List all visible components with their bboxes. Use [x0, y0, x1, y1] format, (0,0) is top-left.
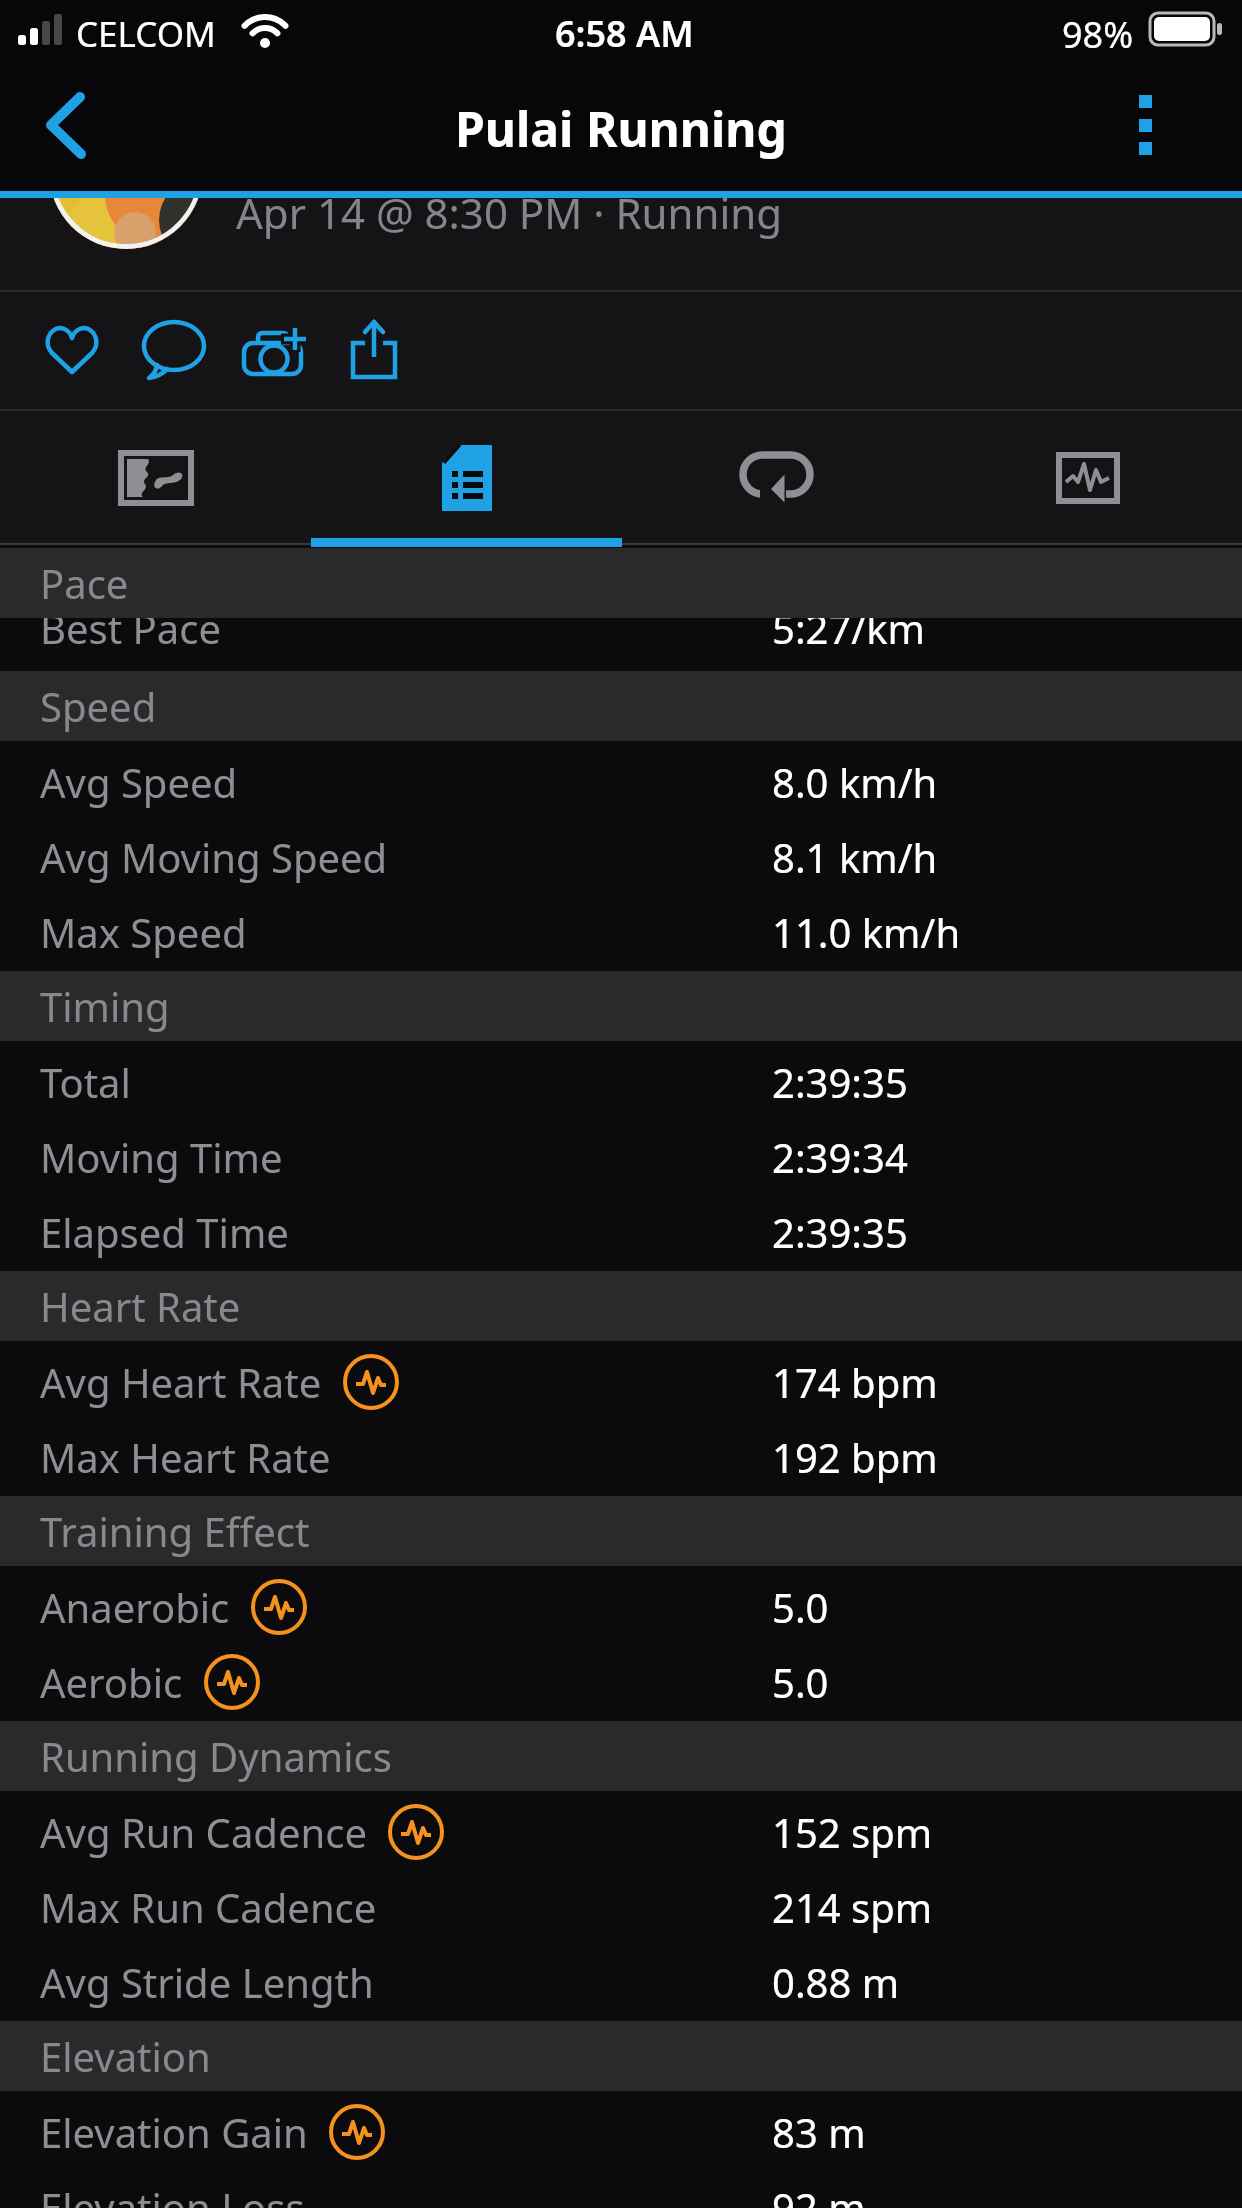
- button[interactable]: [10, 70, 120, 180]
- button[interactable]: [311, 411, 622, 545]
- staticText: Pulai Running: [455, 96, 787, 161]
- staticText: Elevation Gain: [40, 2105, 308, 2159]
- staticText: Elevation Loss: [40, 2180, 305, 2208]
- staticText: 174 bpm: [772, 1355, 938, 1409]
- button[interactable]: [932, 411, 1242, 545]
- button[interactable]: Avg Run Cadence: [0, 1794, 1242, 1869]
- staticText: 8.0 km/h: [772, 755, 938, 809]
- staticText: Elevation: [40, 2029, 211, 2083]
- staticText: Moving Time: [40, 1130, 283, 1184]
- button[interactable]: Avg Speed: [0, 744, 1242, 819]
- staticText: Anaerobic: [40, 1580, 230, 1634]
- staticText: 98%: [1062, 10, 1134, 59]
- staticText: Heart Rate: [40, 1279, 241, 1333]
- staticText: Running Dynamics: [40, 1729, 392, 1783]
- button[interactable]: Elevation Loss: [0, 2169, 1242, 2208]
- button[interactable]: Max Speed: [0, 894, 1242, 969]
- staticText: 5:27/km: [772, 601, 925, 655]
- staticText: Max Heart Rate: [40, 1430, 331, 1484]
- staticText: 5.0: [772, 1655, 829, 1709]
- button[interactable]: Elevation Gain: [0, 2094, 1242, 2169]
- staticText: Avg Heart Rate: [40, 1355, 322, 1409]
- staticText: Speed: [40, 679, 157, 733]
- button[interactable]: [329, 304, 421, 396]
- button[interactable]: Aerobic: [0, 1644, 1242, 1719]
- staticText: Avg Run Cadence: [40, 1805, 367, 1859]
- staticText: 0.88 m: [772, 1955, 900, 2009]
- staticText: Avg Stride Length: [40, 1955, 374, 2009]
- staticText: Max Run Cadence: [40, 1880, 377, 1934]
- staticText: 11.0 km/h: [772, 905, 961, 959]
- button[interactable]: Anaerobic: [0, 1569, 1242, 1644]
- button[interactable]: Moving Time: [0, 1119, 1242, 1194]
- staticText: Total: [40, 1055, 131, 1109]
- staticText: 2:39:35: [772, 1055, 908, 1109]
- button[interactable]: [128, 304, 220, 396]
- staticText: 2:39:35: [772, 1205, 908, 1259]
- staticText: Timing: [40, 979, 170, 1033]
- staticText: Training Effect: [40, 1504, 310, 1558]
- staticText: 214 spm: [772, 1880, 933, 1934]
- button[interactable]: [1105, 80, 1185, 170]
- staticText: Avg Moving Speed: [40, 830, 388, 884]
- staticText: Avg Speed: [40, 755, 238, 809]
- button[interactable]: [26, 304, 118, 396]
- button[interactable]: [0, 411, 311, 545]
- button[interactable]: Avg Moving Speed: [0, 819, 1242, 894]
- button[interactable]: Elapsed Time: [0, 1194, 1242, 1269]
- staticText: 5.0: [772, 1580, 829, 1634]
- button[interactable]: Total: [0, 1044, 1242, 1119]
- staticText: 152 spm: [772, 1805, 933, 1859]
- staticText: 6:58 AM: [555, 9, 694, 58]
- button[interactable]: Max Heart Rate: [0, 1419, 1242, 1494]
- button[interactable]: Avg Heart Rate: [0, 1344, 1242, 1419]
- staticText: 192 bpm: [772, 1430, 938, 1484]
- staticText: Best Pace: [40, 601, 221, 655]
- staticText: Aerobic: [40, 1655, 183, 1709]
- staticText: 83 m: [772, 2105, 866, 2159]
- staticText: CELCOM: [76, 10, 216, 58]
- staticText: 92 m: [772, 2180, 866, 2208]
- staticText: Max Speed: [40, 905, 247, 959]
- button[interactable]: [229, 304, 321, 396]
- button[interactable]: Max Run Cadence: [0, 1869, 1242, 1944]
- button[interactable]: Best Pace: [0, 590, 1242, 665]
- staticText: 2:39:34: [772, 1130, 908, 1184]
- staticText: Elapsed Time: [40, 1205, 289, 1259]
- staticText: 8.1 km/h: [772, 830, 938, 884]
- staticText: Apr 14 @ 8:30 PM · Running: [236, 184, 783, 241]
- button[interactable]: Avg Stride Length: [0, 1944, 1242, 2019]
- staticText: Pace: [40, 556, 129, 610]
- button[interactable]: [621, 411, 932, 545]
